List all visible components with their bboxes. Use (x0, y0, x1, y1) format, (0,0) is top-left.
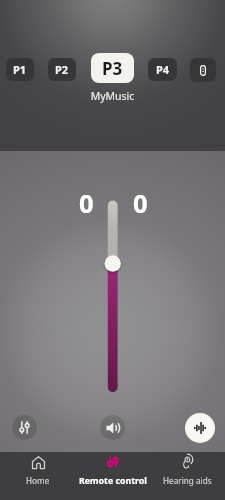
button[interactable]: Battery (190, 58, 216, 82)
button[interactable]: Hearing aids (150, 452, 225, 500)
button[interactable]: P4 (148, 58, 177, 81)
button[interactable]: Sound enhancer (185, 413, 215, 443)
staticText: Remote control (79, 475, 147, 487)
button[interactable]: P1 (6, 58, 34, 81)
staticText: P3 (102, 57, 123, 80)
staticText: 0 (133, 186, 148, 221)
staticText: Hearing aids (163, 475, 212, 486)
button[interactable]: Volume (100, 415, 125, 440)
staticText: P2 (55, 62, 69, 77)
button[interactable]: P3 (91, 53, 134, 83)
button[interactable]: Home (0, 452, 75, 500)
staticText: P1 (13, 62, 27, 77)
staticText: MyMusic (0, 89, 225, 103)
button[interactable]: Remote control (75, 452, 150, 500)
staticText: 0 (79, 186, 94, 221)
staticText: P4 (156, 62, 170, 77)
button[interactable]: P2 (48, 58, 76, 81)
button[interactable]: Equalizer (12, 415, 37, 440)
staticText: Home (26, 475, 50, 486)
